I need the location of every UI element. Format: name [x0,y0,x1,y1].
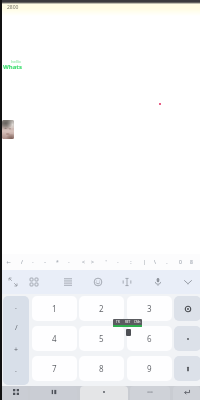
staticText: 7 [52,363,57,374]
staticText: ' [105,259,107,266]
staticText: * [56,259,59,266]
staticText: · [32,259,34,266]
button[interactable]: Numbers [30,386,77,400]
button[interactable]: 4 [32,326,77,351]
staticText: / [21,259,23,266]
button[interactable]: > [86,254,98,270]
button[interactable]: 8 [79,356,124,381]
staticText: Whats [3,63,22,71]
staticText: / [15,323,18,333]
button[interactable]: Keyboard layout [25,270,43,294]
staticText: 6 [147,333,152,344]
button[interactable]: - [39,254,51,270]
staticText: 0 [179,259,182,266]
staticText: · [15,367,17,377]
button[interactable]: * [51,254,63,270]
button[interactable]: | [138,254,150,270]
staticText: CMn [134,320,141,324]
staticText: 4 [52,333,57,344]
staticText: 3 [147,303,152,314]
button[interactable]: Hide keyboard [179,270,197,294]
button[interactable]: 9 [127,356,172,381]
staticText: TR [116,320,120,324]
button[interactable]: / [16,254,28,270]
button[interactable]: Enter [173,386,200,400]
staticText: · [117,259,119,266]
button[interactable]: ← [2,254,14,270]
staticText: 8 [99,363,104,374]
staticText: | [143,259,146,266]
staticText: : [130,259,132,266]
staticText: < [82,259,85,266]
button[interactable]: \ [149,254,161,270]
staticText: · [15,304,17,314]
staticText: \ [154,259,156,266]
button[interactable]: 8 [185,254,197,270]
staticText: RET [125,320,131,324]
button[interactable]: Comma [174,356,200,381]
button[interactable]: Emoji [89,270,107,294]
staticText: 5 [99,333,104,344]
button[interactable]: 0 [174,254,186,270]
button[interactable]: Space [80,386,128,400]
staticText: 2800 [7,4,19,11]
staticText: · [68,259,70,266]
staticText: > [91,259,94,266]
staticText: 9 [147,363,152,374]
button[interactable]: More [130,386,170,400]
button[interactable]: ' [100,254,112,270]
button[interactable]: Symbols [3,296,29,385]
staticText: - [44,259,46,266]
button[interactable]: Contact photo [2,120,14,139]
staticText: 2 [99,303,104,314]
button[interactable]: < [77,254,89,270]
button[interactable]: Resize keyboard [4,270,22,294]
button[interactable]: 3 [127,296,172,321]
button[interactable]: Text editing [118,270,136,294]
button[interactable]: 5 [79,326,124,351]
button[interactable]: Backspace [174,296,200,321]
staticText: 8 [190,259,193,266]
staticText: 1 [52,303,57,314]
button[interactable]: Period [174,326,200,351]
staticText: + [14,345,19,355]
staticText: ← [6,259,11,265]
button[interactable]: : [125,254,137,270]
button[interactable]: 1 [32,296,77,321]
staticText: hello [11,59,21,64]
button[interactable]: 6 [127,326,172,351]
button[interactable]: 2 [79,296,124,321]
button[interactable]: Clipboard [59,270,77,294]
button[interactable]: Voice input [149,270,167,294]
staticText: . [166,259,168,266]
button[interactable]: Switch keyboard [3,386,28,400]
button[interactable]: 7 [32,356,77,381]
